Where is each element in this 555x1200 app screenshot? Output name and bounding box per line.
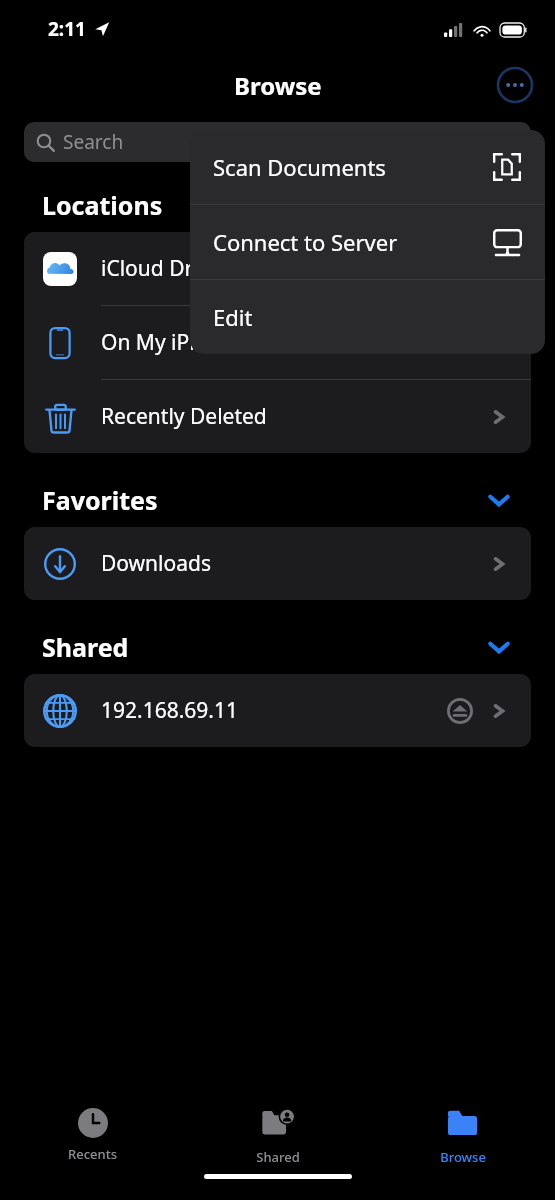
staticText: Browse bbox=[234, 69, 322, 102]
button[interactable]: Recently Deleted bbox=[24, 380, 531, 453]
button[interactable]: On My iPhone bbox=[24, 306, 531, 379]
button[interactable]: Collapse Favorites bbox=[485, 486, 513, 514]
button[interactable]: Eject bbox=[447, 698, 473, 724]
staticText: 2:11 bbox=[48, 16, 86, 42]
staticText: Shared bbox=[256, 1148, 300, 1166]
staticText: On My iPhone bbox=[101, 328, 240, 357]
staticText: Browse bbox=[440, 1148, 486, 1166]
button[interactable]: Downloads bbox=[24, 527, 531, 600]
button[interactable]: iCloud Drive bbox=[24, 232, 531, 305]
button[interactable]: Browse bbox=[370, 1094, 555, 1174]
button[interactable]: Connect to Server bbox=[190, 205, 545, 279]
button[interactable]: Recents bbox=[0, 1094, 185, 1174]
staticText: Favorites bbox=[42, 483, 158, 517]
button[interactable]: 192.168.69.11 bbox=[24, 674, 531, 747]
staticText: Search bbox=[63, 129, 124, 155]
staticText: Downloads bbox=[101, 549, 211, 578]
staticText: Recents bbox=[68, 1145, 117, 1163]
staticText: iCloud Drive bbox=[101, 254, 222, 283]
staticText: 192.168.69.11 bbox=[101, 696, 239, 725]
button[interactable]: Scan Documents bbox=[190, 130, 545, 204]
staticText: Recently Deleted bbox=[101, 402, 267, 431]
button[interactable]: Collapse Shared bbox=[485, 633, 513, 661]
staticText: Scan Documents bbox=[213, 152, 386, 182]
staticText: Connect to Server bbox=[213, 227, 398, 257]
button[interactable]: More options bbox=[496, 66, 534, 104]
button[interactable]: Shared bbox=[185, 1094, 370, 1174]
staticText: Edit bbox=[213, 302, 253, 332]
staticText: Shared bbox=[42, 630, 129, 664]
button[interactable]: Edit bbox=[190, 280, 545, 354]
button[interactable]: Search bbox=[24, 122, 531, 162]
staticText: Locations bbox=[42, 188, 163, 222]
